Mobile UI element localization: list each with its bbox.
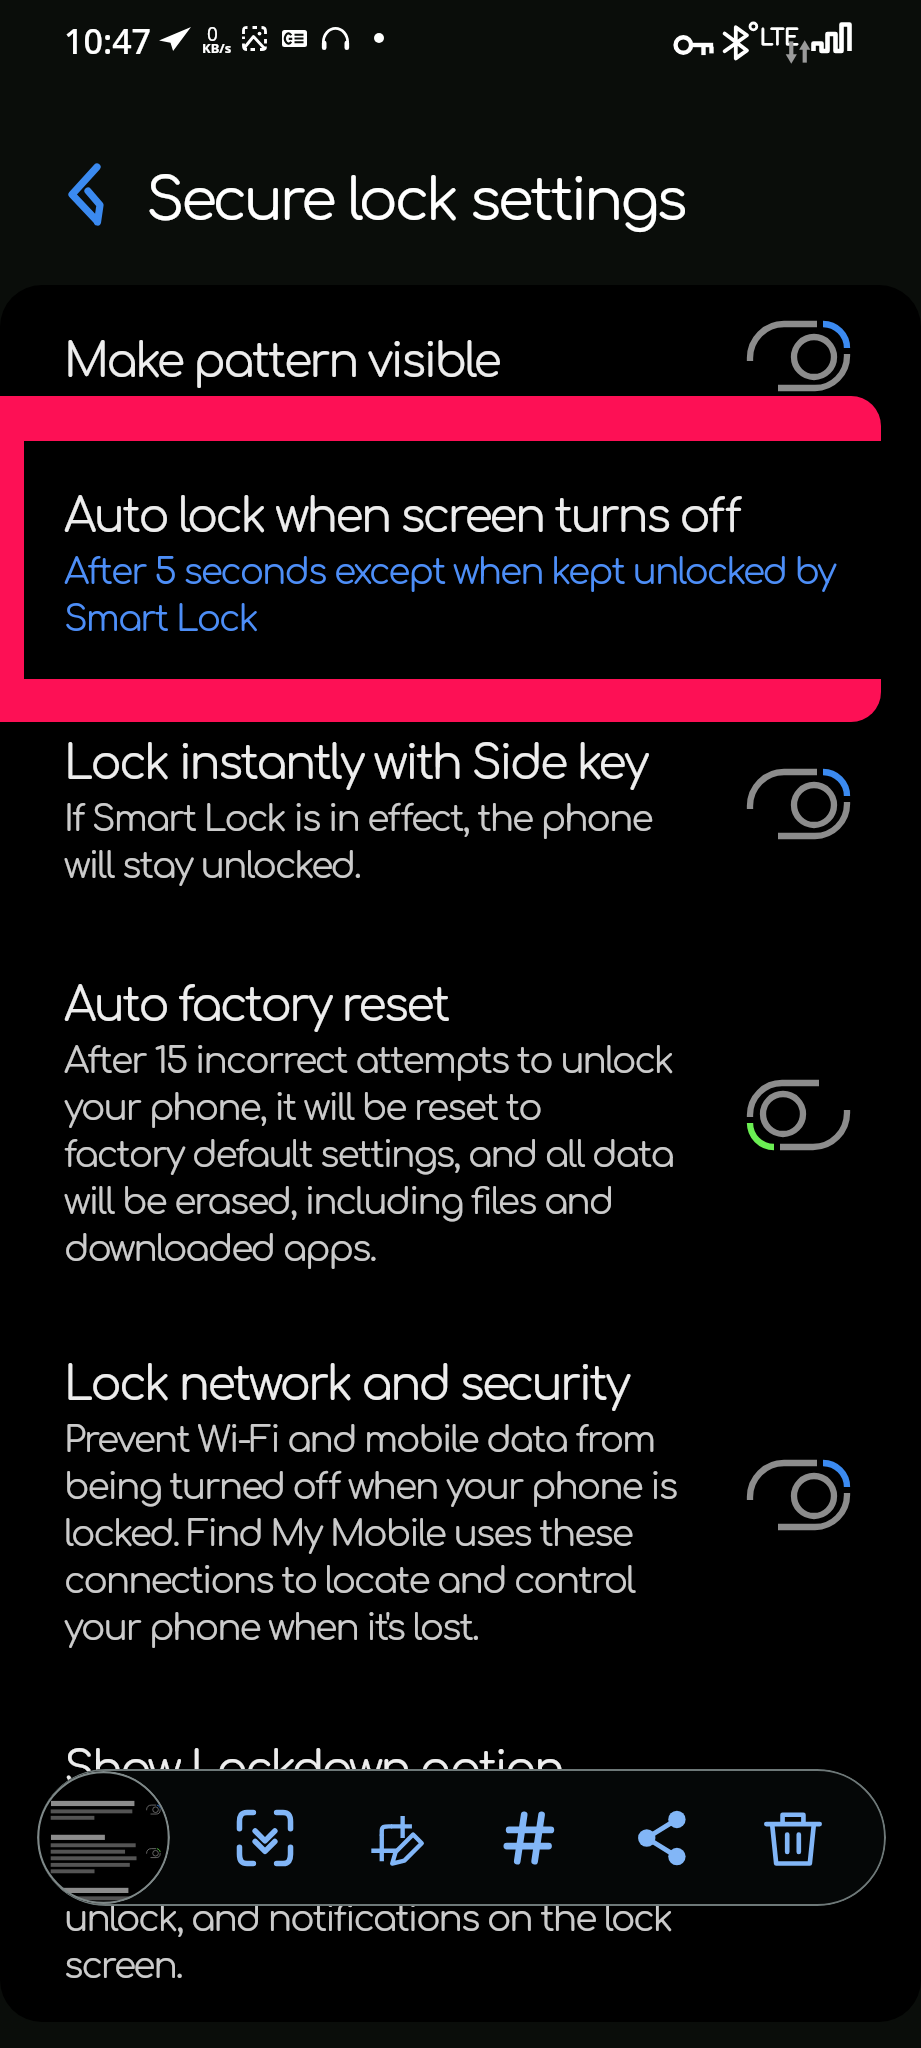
button[interactable]: Toggle xyxy=(737,1069,860,1161)
staticText: 10:47 xyxy=(64,18,152,64)
button[interactable]: Toggle xyxy=(737,758,860,850)
staticText: After 5 seconds except when kept unlocke… xyxy=(64,547,921,641)
button[interactable] xyxy=(0,930,921,1310)
button[interactable] xyxy=(24,441,882,679)
button[interactable] xyxy=(0,1310,921,1690)
button[interactable]: Scroll capture xyxy=(215,1788,315,1888)
button[interactable] xyxy=(0,722,921,930)
staticText: Make pattern visible xyxy=(64,332,921,390)
staticText: Secure lock settings xyxy=(146,163,921,235)
staticText: Auto lock when screen turns off xyxy=(64,487,921,545)
staticText: Lock instantly with Side key xyxy=(64,734,921,792)
button[interactable]: Toggle xyxy=(737,310,860,402)
button[interactable] xyxy=(0,1690,921,2022)
button[interactable]: Toggle xyxy=(737,1449,860,1541)
button[interactable]: Delete xyxy=(743,1788,843,1888)
staticText: After 15 incorrect attempts to unlock yo… xyxy=(64,1036,921,1271)
staticText: Show Lockdown option xyxy=(64,1740,921,1798)
staticText: Auto lock when screen turns off xyxy=(64,487,921,545)
button[interactable] xyxy=(0,441,921,679)
staticText: Auto factory reset xyxy=(64,976,921,1034)
button[interactable]: Share xyxy=(613,1788,713,1888)
button[interactable]: Add tags xyxy=(480,1788,580,1888)
button[interactable]: Crop and edit xyxy=(348,1788,448,1888)
staticText: If Smart Lock is in effect, the phone wi… xyxy=(64,794,921,888)
button[interactable]: Toggle xyxy=(737,1805,860,1897)
staticText: 0 xyxy=(207,21,218,47)
button[interactable] xyxy=(0,285,921,396)
staticText: KB/s xyxy=(202,39,232,57)
button[interactable]: Back xyxy=(52,150,144,242)
staticText: Show Lockdown in the Power menu. It turn… xyxy=(64,1800,921,1988)
staticText: LTE xyxy=(760,24,820,50)
staticText: After 5 seconds except when kept unlocke… xyxy=(64,547,921,641)
button[interactable]: Screenshot preview xyxy=(37,1771,170,1904)
staticText: Lock network and security xyxy=(64,1355,921,1413)
staticText: Prevent Wi-Fi and mobile data from being… xyxy=(64,1415,921,1650)
